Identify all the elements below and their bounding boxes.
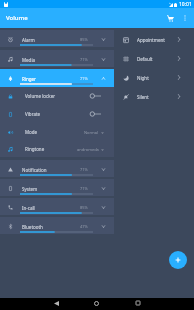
staticText: Vibrate [25,111,41,117]
button[interactable]: Home [76,298,116,310]
staticText: Night [137,75,149,81]
staticText: Default [137,56,153,62]
staticText: 47% [80,224,88,229]
staticText: Alarm [22,37,35,43]
button[interactable]: Default [114,49,194,68]
button[interactable]: Silent [114,87,194,106]
button[interactable]: Back [36,298,76,310]
staticText: Ringtone [25,146,45,152]
button[interactable]: Mode [0,123,114,141]
staticText: Ringer [22,76,36,82]
staticText: Appointment [137,37,165,43]
button[interactable]: Normal [84,130,104,135]
staticText: 71% [80,57,88,62]
staticText: andromeda [77,147,99,152]
staticText: 71% [80,186,88,191]
staticText: Normal [84,130,99,135]
button[interactable]: Add [169,251,187,269]
button[interactable] [90,92,101,100]
staticText: Mode [25,129,38,135]
staticText: 71% [80,167,88,172]
staticText: 71% [80,76,88,81]
button[interactable]: Ringer [0,69,114,87]
button[interactable] [90,110,101,118]
button[interactable]: More options [178,11,192,25]
button[interactable]: Bluetooth [0,217,114,234]
button[interactable]: Vibrate [0,105,114,123]
button[interactable]: Night [114,68,194,87]
button[interactable]: Notification [0,160,114,177]
staticText: System [22,186,38,192]
button[interactable]: Cart [162,10,178,26]
staticText: Volume [6,14,28,22]
button[interactable]: Media [0,50,114,67]
button[interactable]: System [0,179,114,196]
button[interactable]: Recents [118,298,158,310]
staticText: Silent [137,94,149,100]
staticText: 85% [80,37,88,42]
staticText: Media [22,57,36,63]
staticText: Notification [22,167,47,173]
staticText: 10:01 [179,1,192,8]
staticText: Volume locker [25,93,56,99]
staticText: 85% [80,205,88,210]
button[interactable]: In-call [0,198,114,215]
staticText: Bluetooth [22,224,43,230]
button[interactable]: Ringtone [0,141,114,157]
button[interactable]: Alarm [0,30,114,47]
button[interactable]: andromeda [77,147,104,152]
staticText: In-call [22,205,35,211]
button[interactable]: Appointment [114,30,194,49]
button[interactable]: Volume locker [0,87,114,105]
